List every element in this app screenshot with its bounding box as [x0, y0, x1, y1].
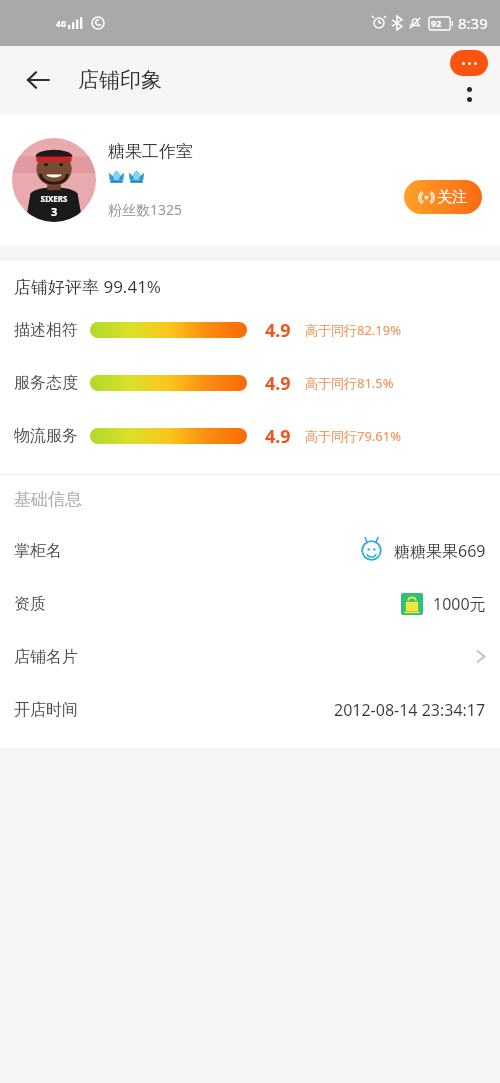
- staticText: 4.9: [265, 371, 291, 395]
- button[interactable]: More options: [463, 83, 476, 106]
- staticText: 开店时间: [14, 700, 78, 720]
- staticText: 8:39: [458, 13, 488, 33]
- staticText: 1000元: [433, 593, 486, 615]
- staticText: 店铺名片: [14, 647, 78, 667]
- staticText: 掌柜名: [14, 541, 62, 561]
- staticText: 高于同行79.61%: [305, 427, 402, 445]
- button[interactable]: Back: [14, 56, 62, 104]
- staticText: 服务态度: [14, 373, 78, 393]
- staticText: SIXERS: [40, 193, 68, 204]
- staticText: 92: [431, 17, 442, 29]
- button[interactable]: Messages: [450, 50, 488, 76]
- staticText: 糖糖果果669: [394, 540, 486, 562]
- staticText: 店铺印象: [78, 67, 162, 93]
- button[interactable]: 店铺名片: [0, 630, 500, 683]
- staticText: 店铺好评率 99.41%: [14, 275, 161, 298]
- button[interactable]: 掌柜名: [0, 524, 500, 577]
- button[interactable]: 资质: [0, 577, 500, 630]
- staticText: 粉丝数1325: [108, 200, 183, 219]
- staticText: 关注: [437, 188, 467, 207]
- button[interactable]: 开店时间: [0, 683, 500, 736]
- staticText: 高于同行82.19%: [305, 321, 402, 339]
- staticText: 4.9: [265, 424, 291, 448]
- staticText: 4G: [56, 18, 67, 29]
- staticText: 高于同行81.5%: [305, 374, 394, 392]
- staticText: 2012-08-14 23:34:17: [334, 699, 486, 721]
- staticText: 描述相符: [14, 320, 78, 340]
- button[interactable]: 关注: [404, 180, 482, 214]
- staticText: 3: [51, 204, 58, 219]
- staticText: 基础信息: [14, 489, 82, 510]
- staticText: 4.9: [265, 318, 291, 342]
- staticText: 物流服务: [14, 426, 78, 446]
- staticText: 糖果工作室: [108, 141, 193, 162]
- staticText: 资质: [14, 594, 46, 614]
